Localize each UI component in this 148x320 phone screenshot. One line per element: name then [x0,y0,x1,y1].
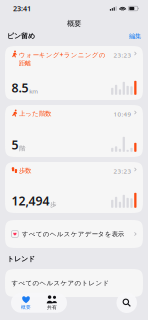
staticText: ウォーキング+ランニングの距離 [19,50,106,67]
staticText: 上った階数 [19,109,51,118]
button[interactable]: 上った階数 [5,105,143,157]
staticText: トレンド [7,255,35,263]
staticText: 5 [11,136,18,153]
staticText: 歩 [50,200,56,208]
staticText: 編集 [129,32,141,40]
staticText: 歩数 [19,166,31,175]
staticText: すべてのヘルスケアのトレンド [11,279,109,287]
staticText: 共有 [47,304,57,310]
button[interactable]: 共有 [39,293,65,313]
button[interactable]: 概要 [13,293,39,313]
staticText: 概要 [67,19,81,28]
staticText: 23:41 [13,4,31,13]
staticText: ピン留め [7,32,35,40]
staticText: 23:23 [113,51,131,59]
button[interactable]: すべてのヘルスケアデータを表示 [5,220,143,248]
staticText: 23:23 [113,167,131,175]
button[interactable]: 検索 [116,292,137,313]
staticText: 12,494 [11,192,49,209]
staticText: すべてのヘルスケアデータを表示 [22,230,124,238]
button[interactable]: 編集 [129,32,141,40]
button[interactable]: ウォーキング+ランニングの距離 [5,46,143,100]
staticText: km [29,87,38,95]
button[interactable]: 歩数 [5,162,143,213]
staticText: 8.5 [11,79,28,96]
staticText: 階 [19,144,25,152]
staticText: 10:49 [113,110,131,118]
staticText: 概要 [21,304,31,310]
